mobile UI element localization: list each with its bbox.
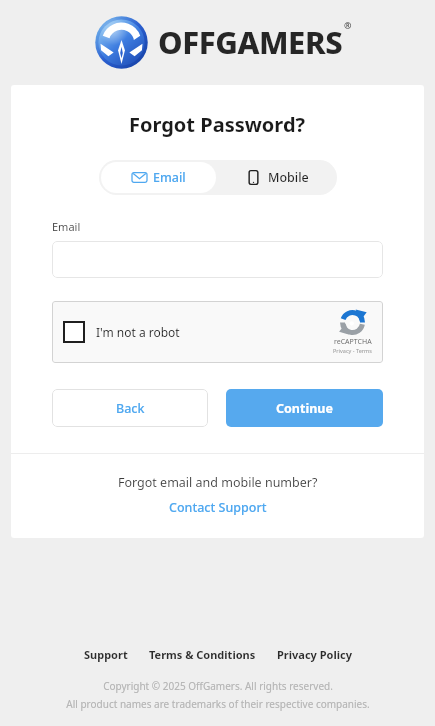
staticText: All product names are trademarks of thei… — [66, 697, 370, 711]
button[interactable]: Privacy Policy — [277, 647, 352, 662]
button[interactable]: Back — [52, 389, 208, 427]
button[interactable]: Email — [101, 162, 216, 193]
staticText: OFFGAMERS — [158, 21, 343, 63]
staticText: Privacy Policy — [277, 647, 352, 662]
staticText: Contact Support — [169, 499, 267, 516]
button[interactable]: Support — [84, 647, 128, 662]
button[interactable]: I'm not a robot checkbox — [63, 321, 85, 343]
staticText: Back — [116, 400, 145, 417]
staticText: Continue — [276, 400, 333, 417]
staticText: I'm not a robot — [96, 324, 180, 340]
staticText: Email — [52, 219, 81, 234]
staticText: Forgot Password? — [129, 111, 306, 138]
staticText: Copyright © 2025 OffGamers. All rights r… — [103, 679, 333, 693]
staticText: ® — [344, 19, 352, 31]
staticText: Support — [84, 647, 128, 662]
staticText: Terms & Conditions — [149, 647, 256, 662]
staticText: Email — [153, 169, 186, 186]
button[interactable]: Contact Support — [169, 499, 267, 516]
staticText: Mobile — [268, 169, 309, 186]
button[interactable]: Mobile — [218, 160, 337, 195]
staticText: reCAPTCHA — [334, 337, 372, 347]
button[interactable]: Terms & Conditions — [149, 647, 256, 662]
button[interactable]: Continue — [226, 389, 383, 427]
button[interactable] — [52, 241, 383, 278]
staticText: Forgot email and mobile number? — [118, 474, 318, 491]
staticText: Privacy - Terms — [333, 347, 372, 354]
